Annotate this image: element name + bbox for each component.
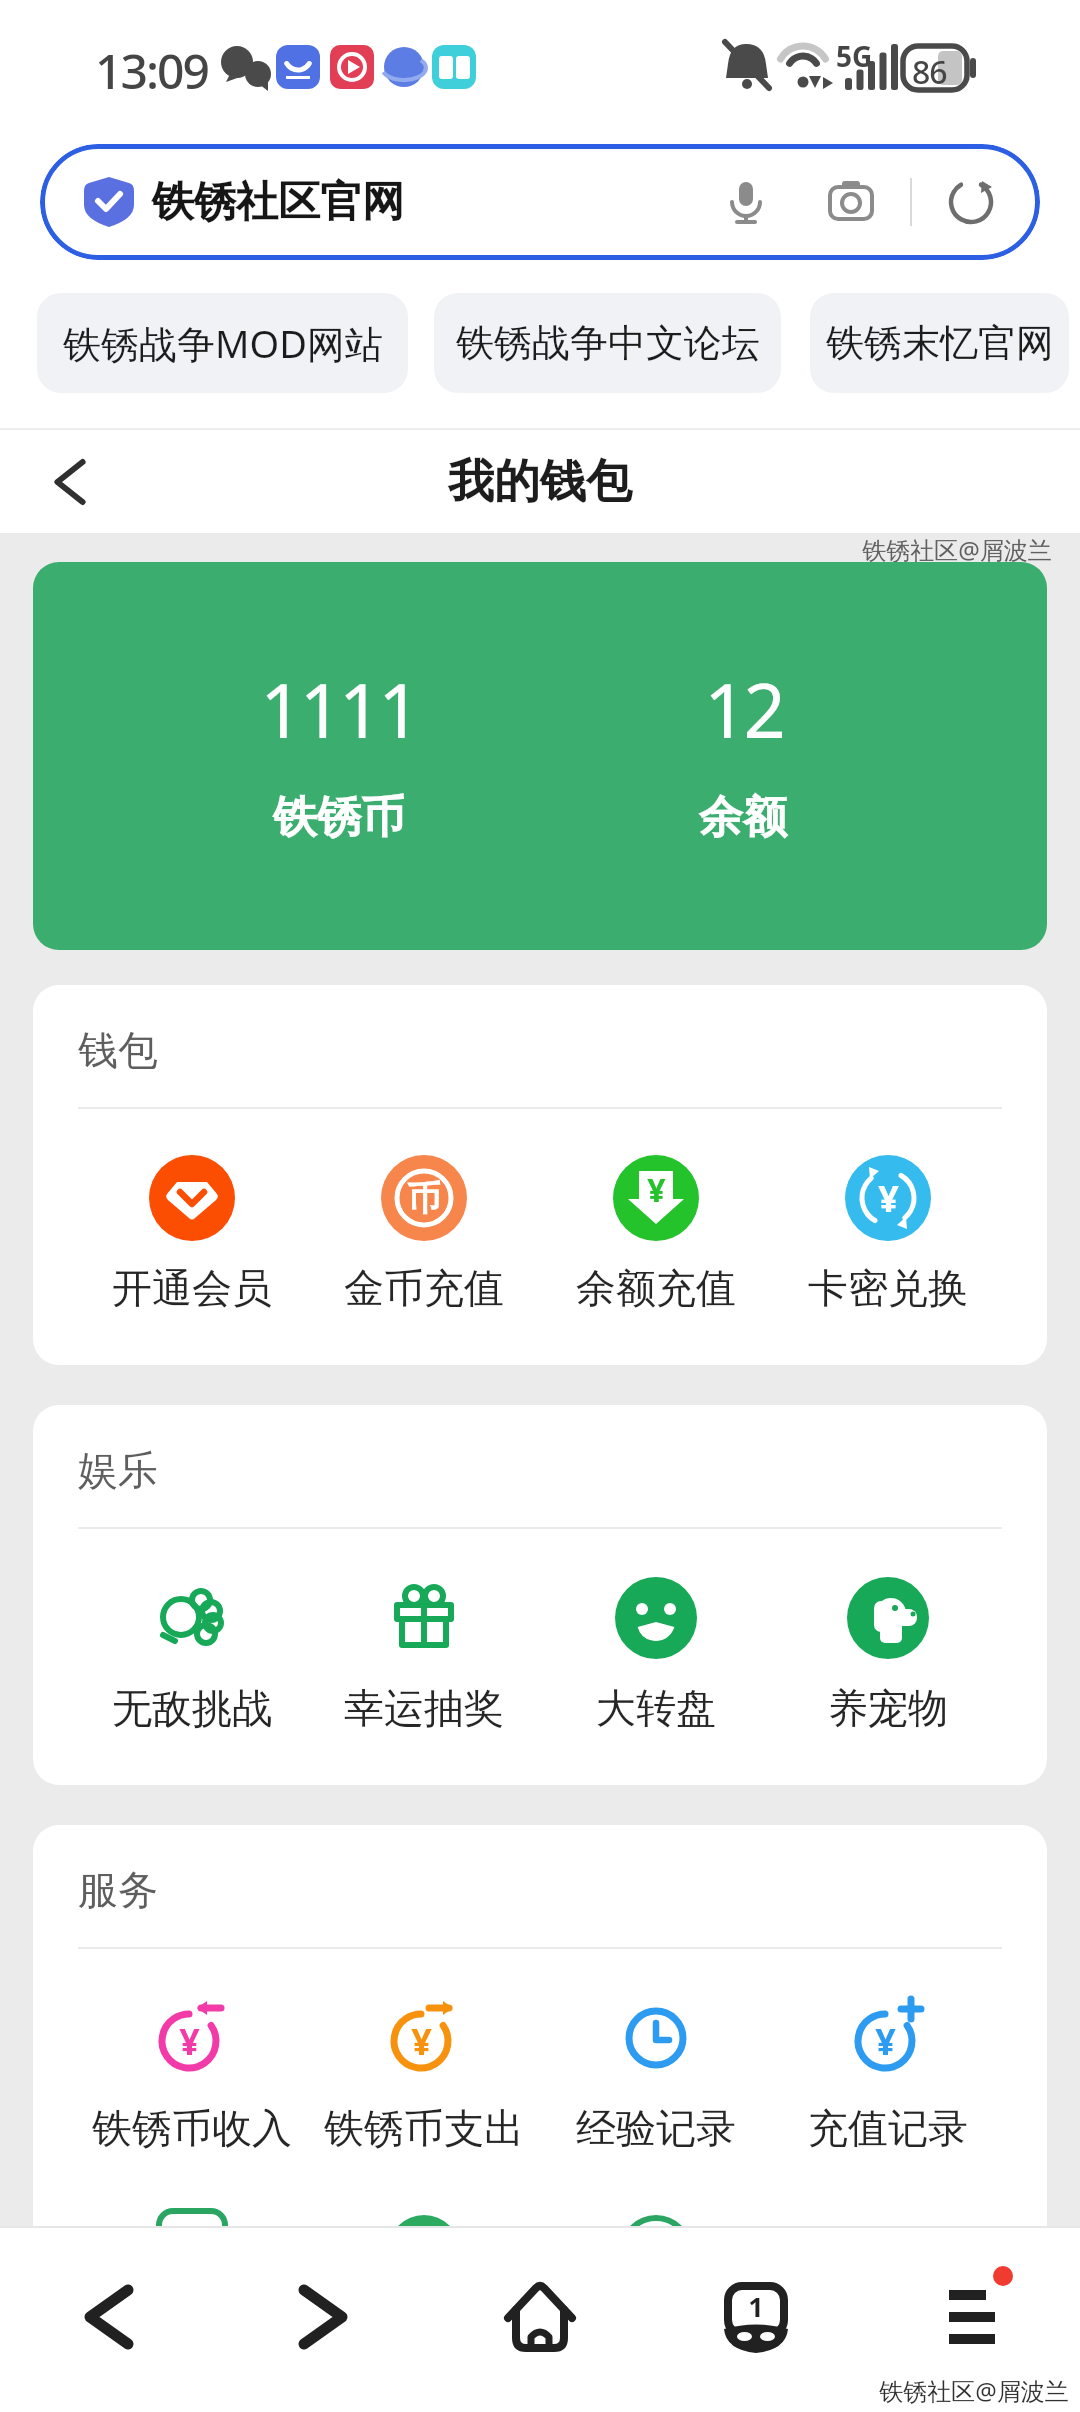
button[interactable]: 1111 — [33, 562, 1047, 950]
staticText: 5G — [836, 37, 873, 75]
staticText: 养宠物 — [828, 1683, 948, 1733]
staticText: ¥ — [878, 1174, 899, 1223]
button[interactable] — [828, 179, 874, 225]
staticText: 娱乐 — [78, 1445, 158, 1495]
button[interactable]: 铁锈末忆官网 — [810, 293, 1069, 393]
staticText: 无敌挑战 — [112, 1683, 272, 1733]
staticText: 铁锈币支出 — [324, 2103, 524, 2153]
staticText: 1111 — [260, 659, 418, 760]
button[interactable] — [216, 2226, 432, 2412]
button[interactable]: 经验记录 — [540, 1995, 772, 2153]
staticText: ¥ — [875, 2017, 896, 2066]
staticText: 余额充值 — [576, 1263, 736, 1313]
button[interactable]: ¥ — [308, 1995, 540, 2153]
staticText: 钱包 — [78, 1025, 158, 1075]
staticText: 金币充值 — [344, 1263, 504, 1313]
staticText: 充值记录 — [808, 2103, 968, 2153]
staticText: 铁锈社区官网 — [152, 176, 404, 229]
staticText: 币 — [407, 1177, 441, 1220]
staticText: 86 — [912, 50, 947, 94]
button[interactable] — [52, 460, 88, 504]
staticText: 13:09 — [95, 38, 208, 103]
button[interactable]: 铁锈社区官网 — [40, 144, 1040, 260]
button[interactable] — [432, 2226, 648, 2412]
button[interactable]: 铁锈战争MOD网站 — [37, 293, 408, 393]
button[interactable]: 铁锈战争中文论坛 — [434, 293, 781, 393]
staticText: 铁锈社区@屑波兰 — [862, 533, 1052, 566]
button[interactable]: 开通会员 — [76, 1155, 308, 1313]
button[interactable]: 养宠物 — [772, 1575, 1004, 1733]
button[interactable]: ¥ — [76, 1995, 308, 2153]
staticText: 铁锈战争中文论坛 — [456, 319, 760, 367]
button[interactable]: 币 — [308, 1155, 540, 1313]
staticText: ¥ — [411, 2017, 432, 2066]
staticText: 服务 — [78, 1865, 158, 1915]
staticText: 铁锈币 — [273, 790, 405, 845]
staticText: 铁锈战争MOD网站 — [63, 317, 383, 369]
button[interactable] — [724, 180, 768, 224]
staticText: 幸运抽奖 — [344, 1683, 504, 1733]
staticText: 铁锈币收入 — [92, 2103, 292, 2153]
staticText: 我的钱包 — [448, 453, 632, 511]
staticText: 卡密兑换 — [808, 1263, 968, 1313]
staticText: ¥ — [179, 2017, 200, 2066]
staticText: 余额 — [699, 790, 787, 845]
button[interactable]: 无敌挑战 — [76, 1575, 308, 1733]
button[interactable]: 幸运抽奖 — [308, 1575, 540, 1733]
staticText: 铁锈社区@屑波兰 — [879, 2374, 1069, 2407]
staticText: 开通会员 — [112, 1263, 272, 1313]
staticText: 大转盘 — [596, 1683, 716, 1733]
button[interactable] — [648, 2226, 864, 2412]
button[interactable] — [0, 2226, 216, 2412]
button[interactable]: 大转盘 — [540, 1575, 772, 1733]
button[interactable] — [948, 179, 994, 225]
button[interactable]: ¥ — [540, 1155, 772, 1313]
staticText: 铁锈末忆官网 — [826, 319, 1054, 367]
staticText: ¥ — [647, 1168, 666, 1212]
staticText: 12 — [704, 659, 783, 760]
button[interactable]: ¥ — [772, 1995, 1004, 2153]
staticText: 经验记录 — [576, 2103, 736, 2153]
staticText: 1 — [748, 2288, 764, 2325]
button[interactable]: ¥ — [772, 1155, 1004, 1313]
button[interactable] — [864, 2226, 1080, 2412]
